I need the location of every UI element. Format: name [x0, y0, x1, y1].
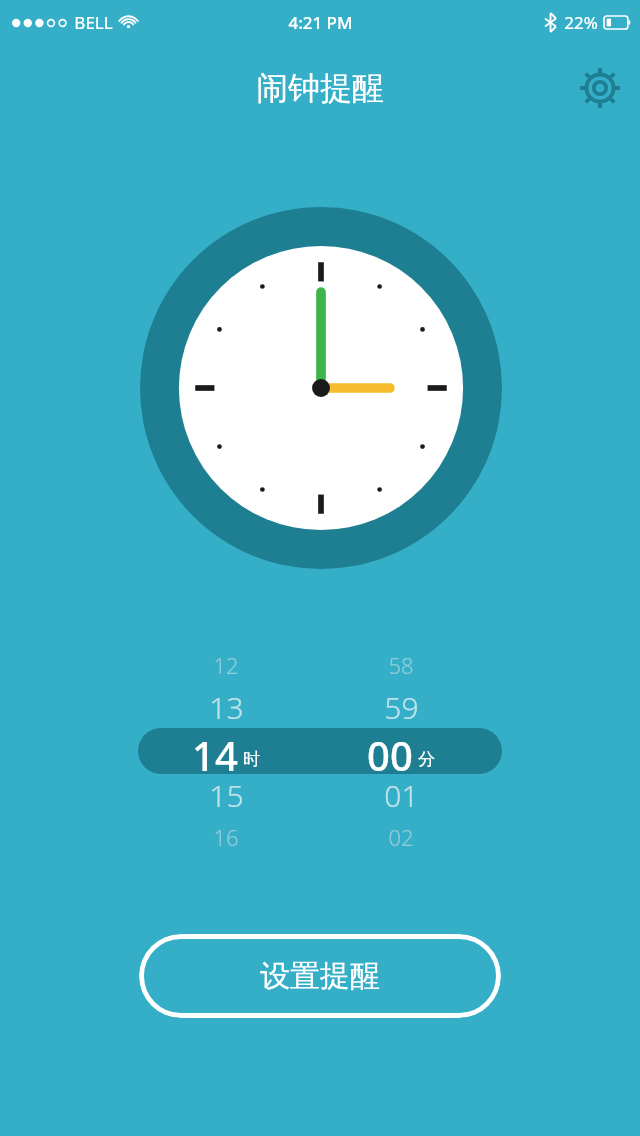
- button[interactable]: 12: [136, 644, 316, 858]
- staticText: 时: [243, 749, 260, 770]
- staticText: 设置提醒: [260, 957, 380, 995]
- button[interactable]: Settings: [574, 62, 626, 114]
- staticText: 00: [367, 728, 413, 774]
- staticText: 02: [388, 822, 414, 852]
- staticText: 58: [388, 650, 414, 680]
- staticText: 4:21 PM: [288, 11, 353, 34]
- button[interactable]: 58: [311, 644, 491, 858]
- staticText: 01: [384, 775, 419, 816]
- staticText: 22%: [564, 11, 598, 34]
- staticText: 闹钟提醒: [256, 68, 384, 108]
- staticText: 15: [209, 775, 244, 816]
- staticText: 12: [213, 650, 239, 680]
- staticText: 分: [418, 749, 435, 770]
- staticText: 13: [209, 687, 244, 728]
- staticText: 16: [213, 822, 239, 852]
- staticText: 14: [192, 728, 238, 774]
- button[interactable]: 设置提醒: [139, 934, 501, 1018]
- staticText: BELL: [74, 11, 113, 34]
- staticText: 59: [384, 687, 419, 728]
